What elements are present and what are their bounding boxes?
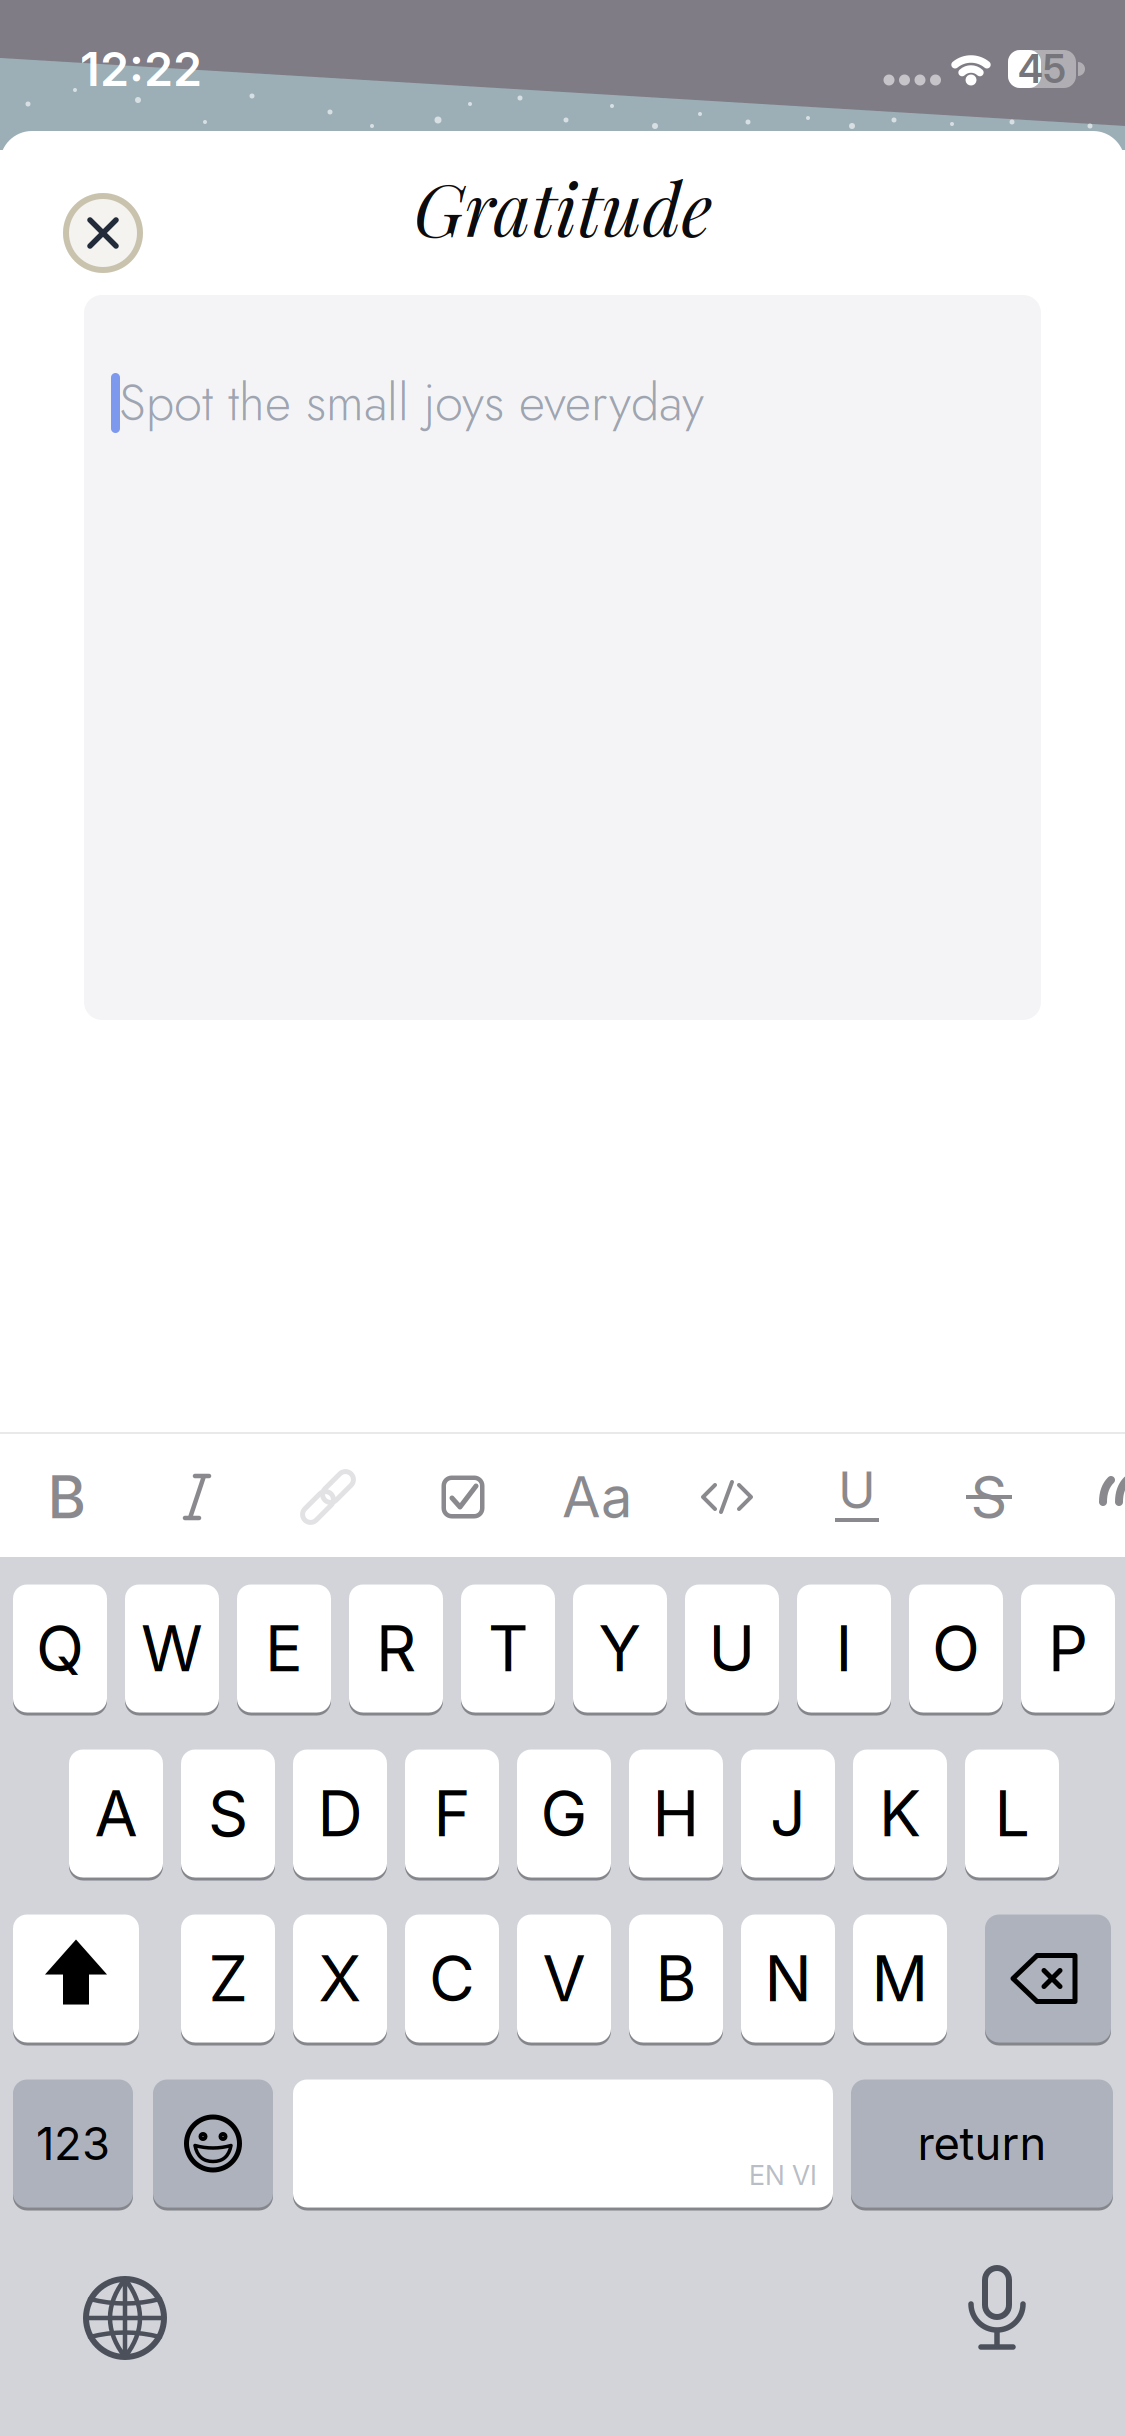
staticText: B	[47, 1461, 86, 1532]
button[interactable]: Dictation	[942, 2257, 1052, 2367]
staticText: Q	[36, 1611, 84, 1686]
button[interactable]: T	[461, 1583, 555, 1714]
button[interactable]: Quote	[1065, 1442, 1125, 1552]
staticText: C	[429, 1941, 475, 2016]
staticText: 123	[36, 2116, 110, 2171]
button[interactable]: Italic	[142, 1442, 252, 1552]
staticText: S	[970, 1462, 1007, 1532]
staticText: return	[917, 2116, 1046, 2171]
staticText: L	[994, 1776, 1029, 1851]
staticText: 12:22	[80, 41, 202, 97]
staticText: B	[655, 1941, 696, 2016]
staticText: V	[542, 1941, 585, 2016]
button[interactable]: Numbers	[13, 2078, 133, 2209]
button[interactable]: G	[517, 1748, 611, 1879]
button[interactable]: Space	[293, 2078, 833, 2209]
staticText: Spot the small joys everyday	[119, 366, 704, 439]
button[interactable]: J	[741, 1748, 835, 1879]
button[interactable]: O	[909, 1583, 1003, 1714]
staticText: K	[879, 1776, 921, 1851]
button[interactable]: B	[629, 1913, 723, 2044]
button[interactable]: I	[797, 1583, 891, 1714]
staticText: M	[871, 1941, 928, 2016]
staticText: Z	[208, 1941, 247, 2016]
button[interactable]: Checklist	[408, 1442, 518, 1552]
button[interactable]: Link	[273, 1442, 383, 1552]
staticText: A	[94, 1776, 137, 1851]
button[interactable]: Next keyboard	[70, 2263, 180, 2373]
staticText: P	[1048, 1611, 1088, 1686]
button[interactable]: W	[125, 1583, 219, 1714]
button[interactable]: Close	[63, 193, 143, 273]
staticText: D	[317, 1776, 362, 1851]
button[interactable]: H	[629, 1748, 723, 1879]
button[interactable]: Text style	[542, 1442, 652, 1552]
button[interactable]: Z	[181, 1913, 275, 2044]
staticText: F	[433, 1776, 470, 1851]
button[interactable]: Code	[672, 1442, 782, 1552]
button[interactable]: S	[181, 1748, 275, 1879]
button[interactable]: Underline	[802, 1442, 912, 1552]
button[interactable]: Delete	[985, 1913, 1111, 2044]
button[interactable]: Emoji	[153, 2078, 273, 2209]
staticText: S	[208, 1776, 248, 1851]
staticText: O	[932, 1611, 980, 1686]
button[interactable]: R	[349, 1583, 443, 1714]
staticText: Y	[598, 1611, 641, 1686]
button[interactable]: Bold	[12, 1442, 122, 1552]
staticText: N	[764, 1941, 811, 2016]
staticText: R	[376, 1611, 416, 1686]
button[interactable]: Strikethrough	[934, 1442, 1044, 1552]
button[interactable]: F	[405, 1748, 499, 1879]
staticText: I	[835, 1611, 852, 1686]
button[interactable]: A	[69, 1748, 163, 1879]
button[interactable]: P	[1021, 1583, 1115, 1714]
button[interactable]: Q	[13, 1583, 107, 1714]
staticText: X	[318, 1941, 361, 2016]
staticText: 45	[1018, 46, 1066, 92]
button[interactable]: E	[237, 1583, 331, 1714]
button[interactable]: N	[741, 1913, 835, 2044]
button[interactable]: Return	[851, 2078, 1113, 2209]
button[interactable]: D	[293, 1748, 387, 1879]
button[interactable]: Y	[573, 1583, 667, 1714]
button[interactable]: K	[853, 1748, 947, 1879]
staticText: T	[488, 1611, 528, 1686]
button[interactable]: M	[853, 1913, 947, 2044]
staticText: Gratitude	[413, 159, 712, 255]
staticText: H	[652, 1776, 699, 1851]
staticText: W	[141, 1611, 203, 1686]
staticText: J	[770, 1776, 806, 1851]
staticText: G	[540, 1776, 587, 1851]
staticText: Aa	[562, 1463, 632, 1531]
staticText: E	[265, 1611, 303, 1686]
staticText: EN VI	[749, 2159, 817, 2191]
button[interactable]: V	[517, 1913, 611, 2044]
staticText: U	[708, 1611, 755, 1686]
button[interactable]: L	[965, 1748, 1059, 1879]
button[interactable]: X	[293, 1913, 387, 2044]
button[interactable]: Shift	[13, 1913, 139, 2044]
staticText: U	[838, 1459, 876, 1521]
button[interactable]: C	[405, 1913, 499, 2044]
button[interactable]: U	[685, 1583, 779, 1714]
